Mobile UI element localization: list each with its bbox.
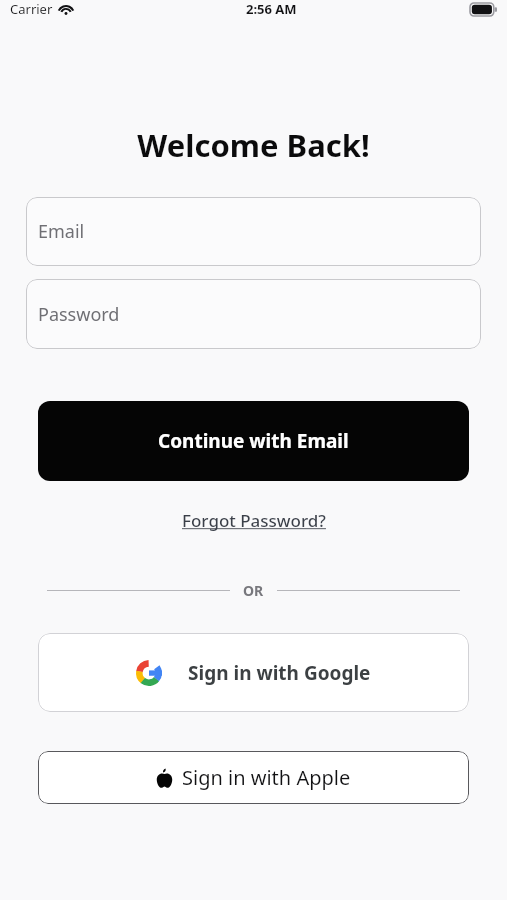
staticText: Welcome Back! (0, 124, 507, 166)
staticText: Continue with Email (158, 428, 349, 454)
button[interactable]: Password (26, 279, 481, 349)
staticText: Sign in with Google (188, 660, 371, 686)
button[interactable]: Forgot Password? (174, 505, 334, 536)
staticText: Carrier (10, 0, 53, 18)
button[interactable]: Email (26, 197, 481, 266)
staticText: OR (243, 581, 264, 600)
other: Apple logo (156, 768, 173, 788)
staticText: Forgot Password? (182, 509, 326, 532)
staticText: Sign in with Apple (182, 764, 351, 791)
other: Google logo (136, 660, 162, 686)
staticText: Email (38, 219, 85, 244)
button[interactable]: Continue with Email (38, 401, 469, 481)
staticText: Password (38, 302, 120, 327)
button[interactable]: Google logo (38, 633, 469, 712)
button[interactable]: Apple logo (38, 751, 469, 804)
staticText: 2:56 AM (246, 0, 297, 18)
